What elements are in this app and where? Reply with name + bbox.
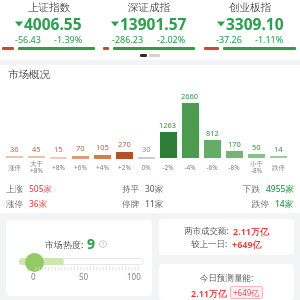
staticText: 2660	[181, 91, 199, 101]
button[interactable]: 上证指数	[1, 0, 96, 52]
staticText: 50	[252, 142, 261, 152]
staticText: 30	[142, 144, 151, 154]
button[interactable]: 市场热度:	[6, 220, 152, 296]
button[interactable]: 停牌	[122, 198, 164, 210]
staticText: 创业板指	[229, 1, 271, 14]
button[interactable]: 创业板指	[203, 0, 297, 52]
staticText: 11家	[145, 198, 164, 210]
staticText: 9	[87, 234, 96, 253]
staticText: 1263	[159, 120, 177, 130]
staticText: 持平	[122, 184, 139, 195]
button[interactable]: 涨停	[6, 198, 48, 210]
staticText: 两市成交额:	[184, 225, 229, 237]
staticText: 今日预测量能:	[200, 272, 254, 284]
staticText: +6%	[74, 163, 87, 172]
staticText: 2.11万亿	[191, 287, 227, 299]
staticText: -286.23	[112, 33, 144, 45]
staticText: 100	[127, 271, 141, 282]
staticText: 812	[206, 128, 219, 138]
staticText: 15	[54, 144, 63, 154]
staticText: 2.11万亿	[233, 225, 269, 237]
staticText: +649亿	[232, 238, 262, 250]
staticText: 14	[274, 144, 283, 154]
staticText: 170	[228, 139, 241, 149]
staticText: +4%	[96, 163, 109, 172]
staticText: 小于 -8%	[250, 160, 263, 175]
staticText: +2%	[118, 163, 131, 172]
staticText: -1.39%	[54, 33, 83, 45]
staticText: 深证成指	[128, 1, 170, 14]
staticText: 较上一日:	[191, 238, 228, 250]
staticText: 50	[79, 271, 89, 282]
staticText: 下跌	[243, 184, 260, 195]
staticText: 4955家	[266, 183, 294, 195]
staticText: 70	[76, 143, 85, 153]
staticText: 270	[118, 139, 131, 149]
button[interactable]: 今日预测量能:	[159, 264, 294, 300]
staticText: 市场热度:	[45, 238, 84, 250]
staticText: ?	[102, 241, 105, 248]
staticText: 3309.10	[226, 13, 284, 34]
staticText: 45	[32, 144, 41, 154]
staticText: 13901.57	[120, 13, 187, 34]
staticText: 停牌	[122, 199, 139, 210]
button[interactable]: 跌停	[252, 198, 294, 210]
staticText: -8%	[228, 163, 240, 172]
button[interactable]: 两市成交额:	[159, 219, 294, 255]
staticText: -1.11%	[255, 33, 284, 45]
staticText: 36家	[29, 198, 48, 210]
staticText: 跌停	[272, 164, 285, 172]
staticText: 0	[31, 271, 36, 282]
staticText: -2.02%	[157, 33, 186, 45]
staticText: -6%	[206, 163, 218, 172]
staticText: 0%	[141, 163, 151, 172]
staticText: -4%	[184, 163, 196, 172]
staticText: 14家	[275, 198, 294, 210]
staticText: -56.43	[15, 33, 41, 45]
staticText: 上证指数	[28, 1, 70, 14]
staticText: 涨停	[6, 199, 23, 210]
staticText: -37.26	[216, 33, 242, 45]
staticText: 涨停	[8, 164, 21, 172]
button[interactable]: 上涨	[6, 183, 53, 195]
button[interactable]: 下跌	[243, 183, 294, 195]
staticText: 市场概况	[8, 68, 50, 81]
staticText: 505家	[29, 183, 53, 195]
staticText: +649亿	[233, 287, 260, 298]
staticText: +8%	[52, 163, 65, 172]
staticText: 跌停	[252, 199, 269, 210]
staticText: 4006.55	[24, 13, 82, 34]
staticText: 30家	[145, 183, 164, 195]
staticText: 36	[10, 144, 19, 154]
staticText: 105	[96, 142, 109, 152]
button[interactable]: 持平	[122, 183, 164, 195]
staticText: -2%	[162, 163, 174, 172]
staticText: 大于 +8%	[30, 160, 43, 175]
staticText: 上涨	[6, 184, 23, 195]
button[interactable]: 深证成指	[102, 0, 196, 52]
